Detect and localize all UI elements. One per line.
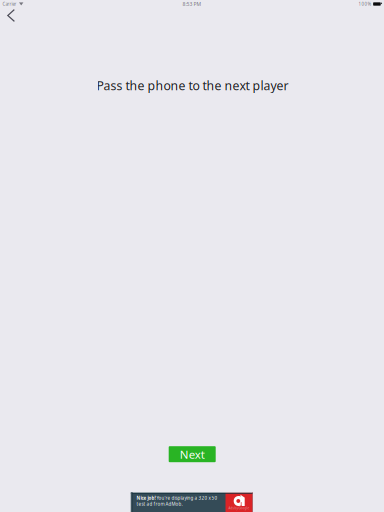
button[interactable]: Next [169, 446, 216, 462]
staticText: Pass the phone to the next player [96, 77, 288, 94]
staticText: 8:53 PM [182, 0, 201, 7]
button[interactable]: Advertisement [130, 492, 252, 512]
staticText: Carrier [2, 1, 16, 7]
staticText: Next [180, 446, 205, 462]
button[interactable]: Back [4, 3, 28, 27]
staticText: Nice job! You're displaying a 320 x 50 [136, 495, 217, 501]
staticText: 100% [358, 1, 371, 7]
staticText: test ad from AdMob. [136, 501, 182, 507]
staticText: Ads by Google [228, 506, 249, 510]
